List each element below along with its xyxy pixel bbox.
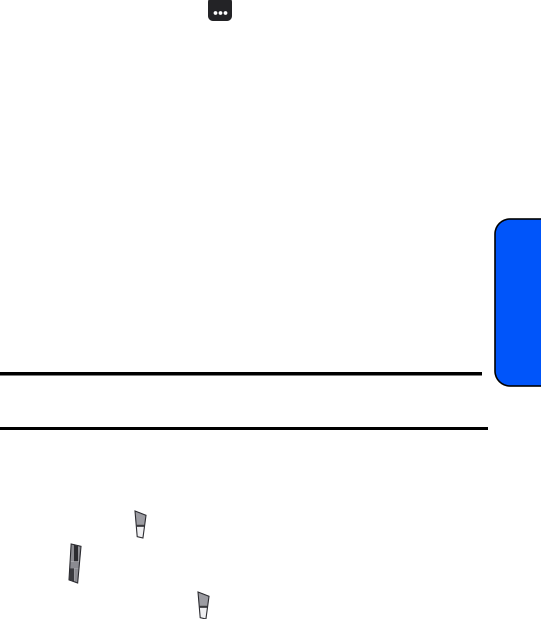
button[interactable]: Action xyxy=(495,219,541,386)
button[interactable]: More xyxy=(208,0,232,21)
